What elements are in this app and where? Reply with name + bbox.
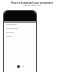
staticText: Profile — [6, 35, 13, 38]
button[interactable]: Download — [17, 65, 20, 68]
button[interactable] — [4, 11, 36, 21]
staticText: step by step guide — [23, 4, 41, 7]
staticText: Statements — [6, 23, 17, 26]
staticText: Settings — [6, 31, 14, 34]
staticText: Transactions — [6, 27, 18, 30]
staticText: How to download your statement — [11, 1, 53, 4]
button[interactable]: Statements — [6, 22, 36, 26]
button[interactable]: Settings — [6, 30, 36, 34]
button[interactable]: Transactions — [6, 26, 36, 30]
button[interactable]: Profile — [6, 34, 36, 38]
